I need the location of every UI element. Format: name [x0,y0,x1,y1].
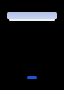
button[interactable]: Continue [27,76,37,79]
button[interactable] [7,12,57,19]
